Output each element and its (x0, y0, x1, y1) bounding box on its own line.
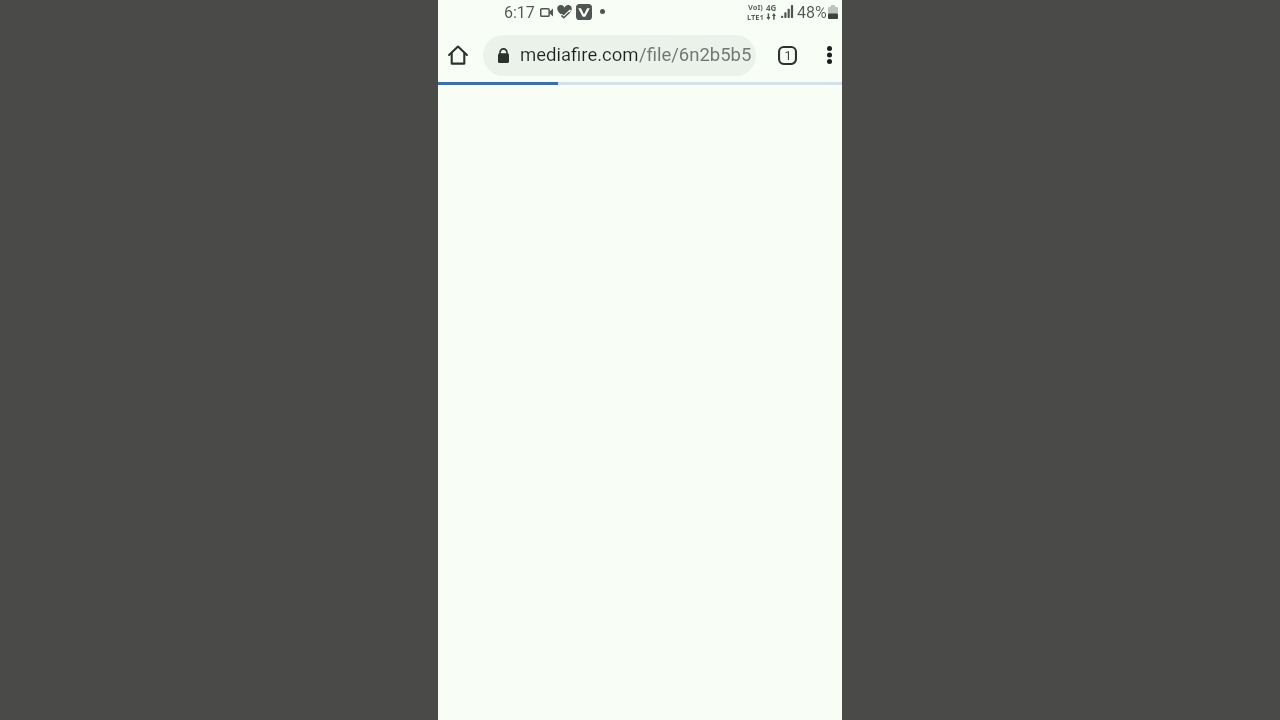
staticText: 6:17 (504, 3, 535, 22)
staticText: 48% (797, 3, 827, 22)
staticText: mediafire.com (520, 44, 639, 66)
staticText: 4G (766, 2, 777, 13)
staticText: 1 (784, 48, 792, 63)
button[interactable]: Tabs (767, 35, 807, 75)
button[interactable]: Home (438, 35, 478, 75)
button[interactable]: mediafire.com (483, 35, 756, 76)
staticText: /file/6n2b5b5 (639, 44, 752, 66)
staticText: LTE1 (747, 12, 764, 22)
button[interactable]: More options (809, 35, 849, 75)
staticText: VoI) (748, 2, 763, 12)
